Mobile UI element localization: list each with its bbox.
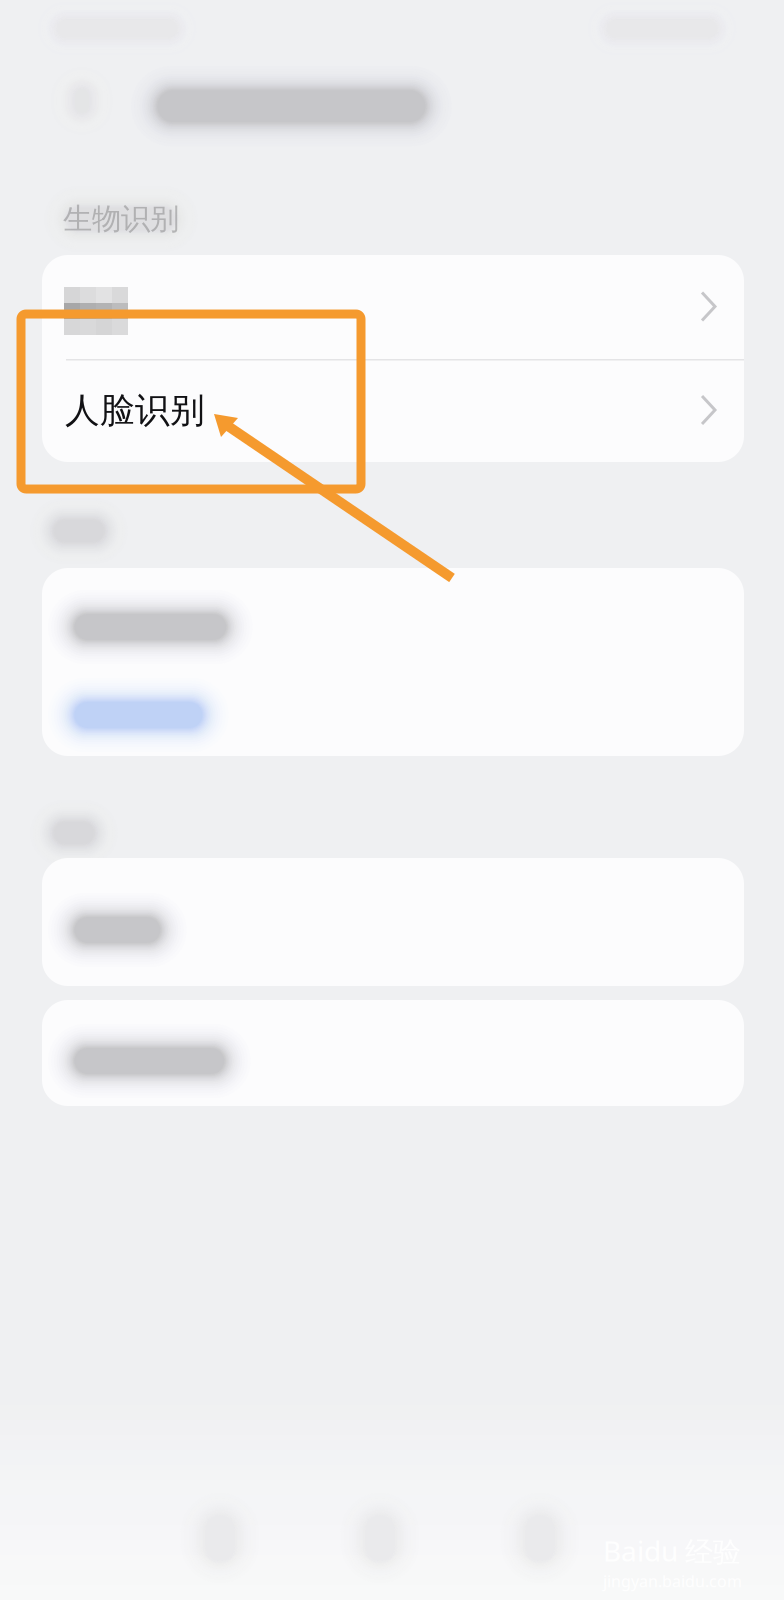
button[interactable]: 锁屏 xyxy=(42,858,744,986)
button[interactable]: 修改密码 xyxy=(42,662,744,756)
staticText: 生物识别 xyxy=(63,201,179,237)
button[interactable]: 指纹识别 xyxy=(42,255,744,359)
staticText: 人脸识别 xyxy=(65,389,205,432)
button[interactable]: Tab xyxy=(300,1478,460,1598)
button[interactable]: 设备密码 xyxy=(42,568,744,662)
button[interactable]: 人脸识别 xyxy=(42,255,744,358)
button[interactable]: 隐私设置 xyxy=(42,1000,744,1106)
button[interactable]: Tab xyxy=(460,1478,620,1598)
button[interactable]: Tab xyxy=(140,1478,300,1598)
